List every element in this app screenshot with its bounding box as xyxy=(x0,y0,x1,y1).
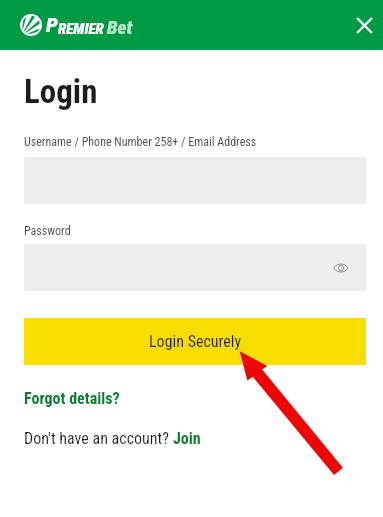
button[interactable]: Show password xyxy=(24,244,366,291)
staticText: P xyxy=(46,13,58,38)
staticText: Join xyxy=(173,429,201,448)
staticText: Login xyxy=(24,72,98,111)
button[interactable]: Forgot details? xyxy=(24,389,120,408)
staticText: Password xyxy=(24,224,71,238)
staticText: Don't have an account? xyxy=(24,429,173,448)
staticText: Username / Phone Number 258+ / Email Add… xyxy=(24,135,257,149)
button[interactable]: Login Securely xyxy=(24,318,366,365)
button[interactable]: Close xyxy=(347,8,381,42)
staticText: Forgot details? xyxy=(24,389,120,408)
button[interactable]: Show password xyxy=(321,248,361,288)
staticText: Login Securely xyxy=(149,332,242,351)
staticText: REMIER xyxy=(58,20,104,38)
button[interactable]: Join xyxy=(173,429,201,448)
staticText: Bet xyxy=(107,16,133,38)
